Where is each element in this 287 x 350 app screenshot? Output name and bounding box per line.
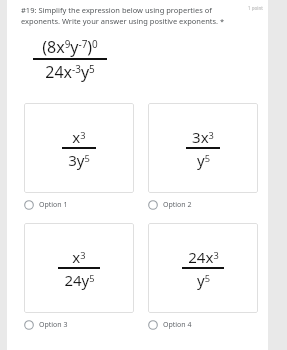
staticText: 3x3 (192, 127, 214, 147)
button[interactable]: 3x3 (148, 103, 258, 193)
staticText: Option 1 (39, 200, 68, 210)
staticText: Option 2 (163, 200, 192, 210)
button[interactable]: Option 3 (24, 317, 68, 333)
staticText: Option 4 (163, 320, 192, 330)
button[interactable]: 24x3 (148, 223, 258, 313)
button[interactable]: Option 1 (24, 197, 68, 213)
staticText: x3 (72, 247, 86, 267)
staticText: (8x9y-7)0 (42, 36, 98, 58)
button[interactable]: Option 4 (148, 317, 192, 333)
button[interactable]: Option 2 (148, 197, 192, 213)
button[interactable]: x3 (24, 103, 134, 193)
staticText: 24y5 (64, 270, 95, 290)
staticText: 1 point (248, 5, 263, 11)
button[interactable]: x3 (24, 223, 134, 313)
staticText: 3y5 (68, 150, 90, 170)
staticText: Option 3 (39, 320, 68, 330)
staticText: y5 (197, 270, 210, 290)
staticText: x3 (72, 127, 86, 147)
staticText: 24x3 (188, 247, 219, 267)
staticText: y5 (197, 150, 210, 170)
staticText: #19: Simplify the expression below using… (21, 5, 244, 26)
staticText: 24x-3y5 (45, 61, 95, 83)
